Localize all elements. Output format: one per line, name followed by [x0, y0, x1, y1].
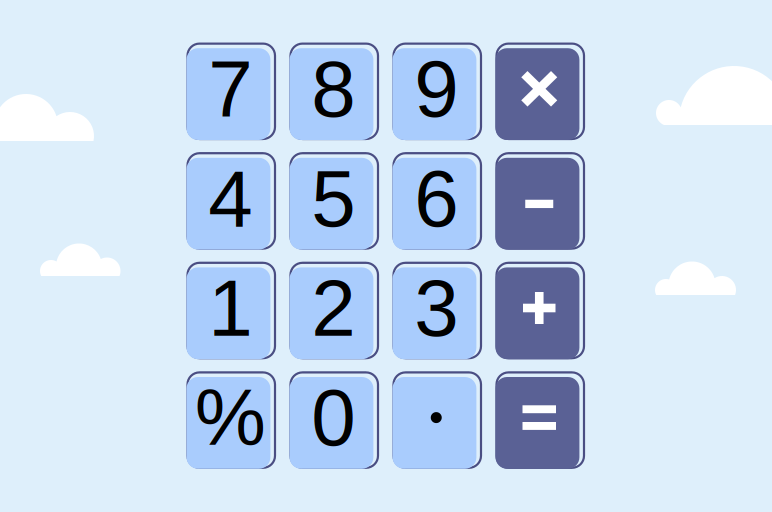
button[interactable]: 6: [393, 153, 481, 249]
button[interactable]: 2: [290, 263, 378, 358]
staticText: 7: [208, 44, 252, 133]
staticText: 0: [311, 373, 355, 462]
button[interactable]: Decimal point: [393, 372, 481, 468]
button[interactable]: 1: [187, 263, 275, 358]
button[interactable]: Multiply: [496, 44, 584, 139]
button[interactable]: 7: [187, 44, 275, 139]
staticText: 6: [414, 154, 458, 243]
button[interactable]: 4: [187, 153, 275, 249]
staticText: 5: [311, 154, 355, 243]
button[interactable]: Subtract: [496, 153, 584, 249]
staticText: 8: [311, 44, 355, 133]
button[interactable]: 9: [393, 44, 481, 139]
staticText: 4: [208, 154, 252, 243]
button[interactable]: Equals: [496, 372, 584, 468]
staticText: 3: [414, 263, 458, 353]
staticText: 1: [208, 263, 252, 353]
button[interactable]: %: [187, 372, 275, 468]
button[interactable]: 3: [393, 263, 481, 358]
staticText: 2: [311, 263, 355, 353]
button[interactable]: Add: [496, 263, 584, 358]
button[interactable]: 5: [290, 153, 378, 249]
button[interactable]: 0: [290, 372, 378, 468]
staticText: 9: [414, 44, 458, 133]
staticText: %: [195, 373, 266, 462]
button[interactable]: 8: [290, 44, 378, 139]
